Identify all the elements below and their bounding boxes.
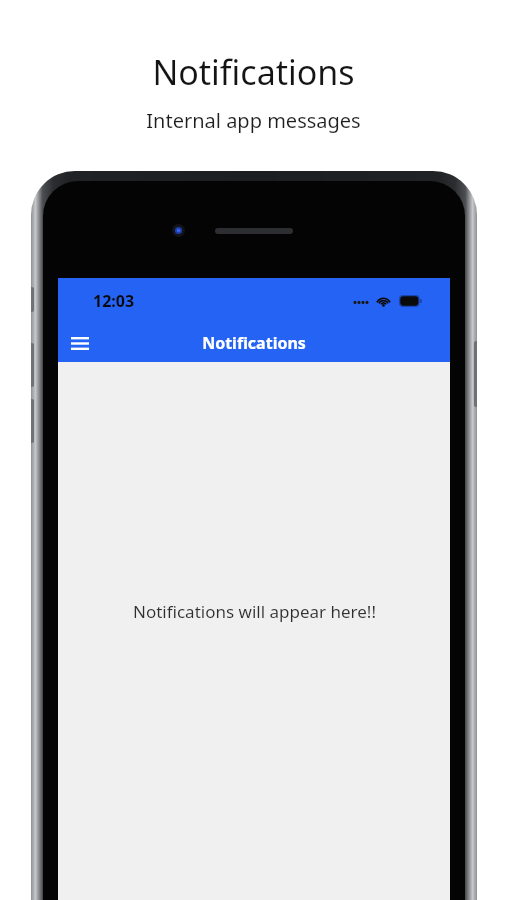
staticText: Notifications [202, 332, 306, 354]
button[interactable]: Open navigation menu [62, 325, 98, 361]
staticText: Internal app messages [146, 107, 361, 134]
staticText: Notifications [152, 49, 355, 95]
staticText: Notifications will appear here!! [133, 600, 376, 623]
staticText: 12:03 [93, 290, 135, 312]
